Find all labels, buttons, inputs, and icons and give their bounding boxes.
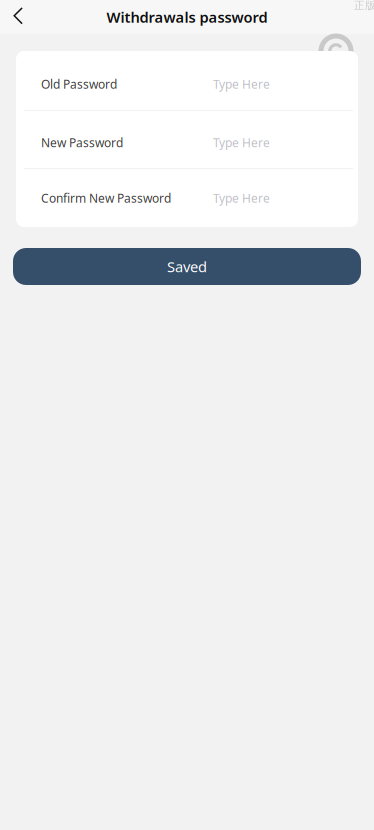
staticText: Type Here xyxy=(213,76,270,92)
staticText: Confirm New Password xyxy=(41,190,171,206)
button[interactable]: Confirm New Password xyxy=(16,169,358,227)
button[interactable]: Saved xyxy=(13,248,361,285)
staticText: New Password xyxy=(41,134,123,150)
staticText: 正版 xyxy=(354,0,374,12)
staticText: Old Password xyxy=(41,76,117,92)
staticText: Saved xyxy=(167,257,207,276)
button[interactable]: Back xyxy=(0,0,37,34)
staticText: Withdrawals password xyxy=(106,7,267,27)
staticText: Type Here xyxy=(213,190,270,206)
button[interactable]: Old Password xyxy=(16,51,358,110)
button[interactable]: New Password xyxy=(16,111,358,168)
staticText: Type Here xyxy=(213,134,270,150)
